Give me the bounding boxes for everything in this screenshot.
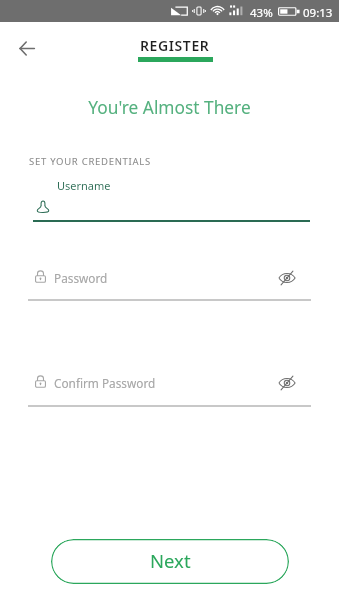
staticText: 43% [250, 5, 273, 21]
button[interactable]: Show password [274, 265, 300, 291]
staticText: REGISTER [140, 36, 210, 55]
button[interactable]: Back [10, 32, 43, 65]
staticText: Password [54, 270, 108, 286]
staticText: Next [150, 548, 191, 573]
button[interactable]: Next [51, 539, 289, 584]
button[interactable]: Show password [274, 370, 300, 396]
button[interactable]: Confirm Password [28, 365, 311, 405]
button[interactable]: Username [28, 176, 311, 222]
staticText: SET YOUR CREDENTIALS [29, 155, 151, 168]
staticText: 09:13 [303, 5, 333, 21]
staticText: Confirm Password [54, 375, 156, 391]
staticText: Username [57, 178, 111, 193]
button[interactable]: Password [28, 260, 311, 300]
staticText: You're Almost There [0, 96, 339, 120]
button[interactable]: REGISTER [125, 36, 225, 62]
